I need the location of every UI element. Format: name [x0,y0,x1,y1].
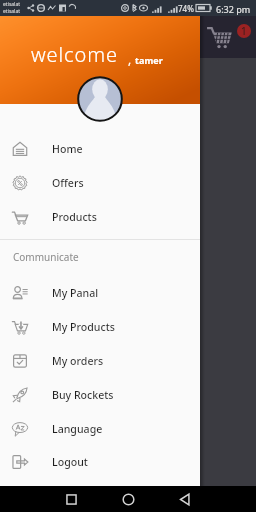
staticText: Logout [52,455,88,469]
button[interactable]: Offers [0,166,200,200]
button[interactable]: Buy Rockets [0,378,200,412]
staticText: 1 [241,24,247,38]
button[interactable]: Home [0,132,200,166]
button[interactable]: Language [0,412,200,446]
staticText: welcome [31,41,118,68]
button[interactable]: Logout [0,445,200,479]
button[interactable]: Shopping cart [206,24,232,50]
staticText: 74% [178,3,194,14]
staticText: 6:32 pm [216,3,251,15]
staticText: My orders [52,354,104,368]
staticText: Language [52,422,103,436]
staticText: My Products [52,320,115,334]
staticText: Home [52,142,83,156]
button[interactable]: Back [176,490,195,509]
staticText: , [128,51,132,67]
staticText: Products [52,210,97,224]
button[interactable]: My Products [0,310,200,344]
staticText: etisalat etisalat [3,1,21,14]
button[interactable]: Home [119,490,138,509]
staticText: Buy Rockets [52,388,114,402]
button[interactable]: My orders [0,344,200,378]
staticText: Offers [52,176,84,190]
staticText: Communicate [13,250,79,264]
button[interactable]: My Panal [0,276,200,310]
button[interactable]: Recent apps [62,490,81,509]
staticText: My Panal [52,286,99,300]
staticText: tamer [135,54,163,66]
button[interactable]: Products [0,200,200,234]
button[interactable]: Profile picture [77,76,123,122]
button[interactable]: Cart item count [237,24,251,38]
